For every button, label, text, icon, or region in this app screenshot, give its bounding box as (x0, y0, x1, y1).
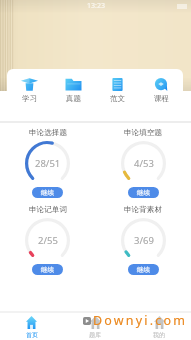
button[interactable]: 题库 (63, 313, 127, 339)
button[interactable]: 继续 (32, 187, 63, 198)
button[interactable]: 申论背素材 (95, 200, 191, 275)
staticText: 申论选择题 (29, 128, 67, 138)
staticText: 13:23 (87, 1, 105, 11)
button[interactable]: 申论记单词 (0, 200, 95, 275)
other: Essays (109, 78, 126, 91)
button[interactable]: 继续 (32, 264, 63, 275)
staticText: 申论填空题 (124, 128, 162, 138)
staticText: 题库 (89, 331, 101, 339)
staticText: 继续 (41, 189, 54, 197)
staticText: 2/55 (38, 234, 58, 247)
staticText: 3/69 (134, 234, 154, 247)
staticText: 28/51 (35, 157, 61, 170)
button[interactable]: 申论填空题 (95, 123, 191, 198)
button[interactable]: 申论选择题 (0, 123, 95, 198)
button[interactable]: 继续 (128, 264, 159, 275)
other: Courses (153, 78, 170, 91)
staticText: 首页 (26, 331, 38, 339)
button[interactable]: 我的 (127, 313, 191, 339)
staticText: 继续 (41, 266, 54, 274)
button[interactable]: Past papers (51, 69, 95, 103)
staticText: 申论记单词 (29, 205, 67, 215)
staticText: 课程 (154, 94, 169, 103)
button[interactable]: 继续 (128, 187, 159, 198)
staticText: 范文 (110, 94, 125, 103)
button[interactable]: Study (7, 69, 51, 103)
staticText: 申论背素材 (124, 205, 162, 215)
button[interactable]: Essays (95, 69, 139, 103)
staticText: Downyi.com (93, 312, 188, 329)
staticText: 我的 (153, 331, 165, 339)
other: Study (21, 78, 38, 91)
staticText: 继续 (137, 266, 150, 274)
other: Past papers (65, 78, 82, 91)
staticText: 4/53 (134, 157, 154, 170)
staticText: 继续 (137, 189, 150, 197)
staticText: 学习 (22, 94, 37, 103)
button[interactable]: 首页 (0, 313, 63, 339)
button[interactable]: Courses (139, 69, 183, 103)
staticText: 真题 (66, 94, 81, 103)
